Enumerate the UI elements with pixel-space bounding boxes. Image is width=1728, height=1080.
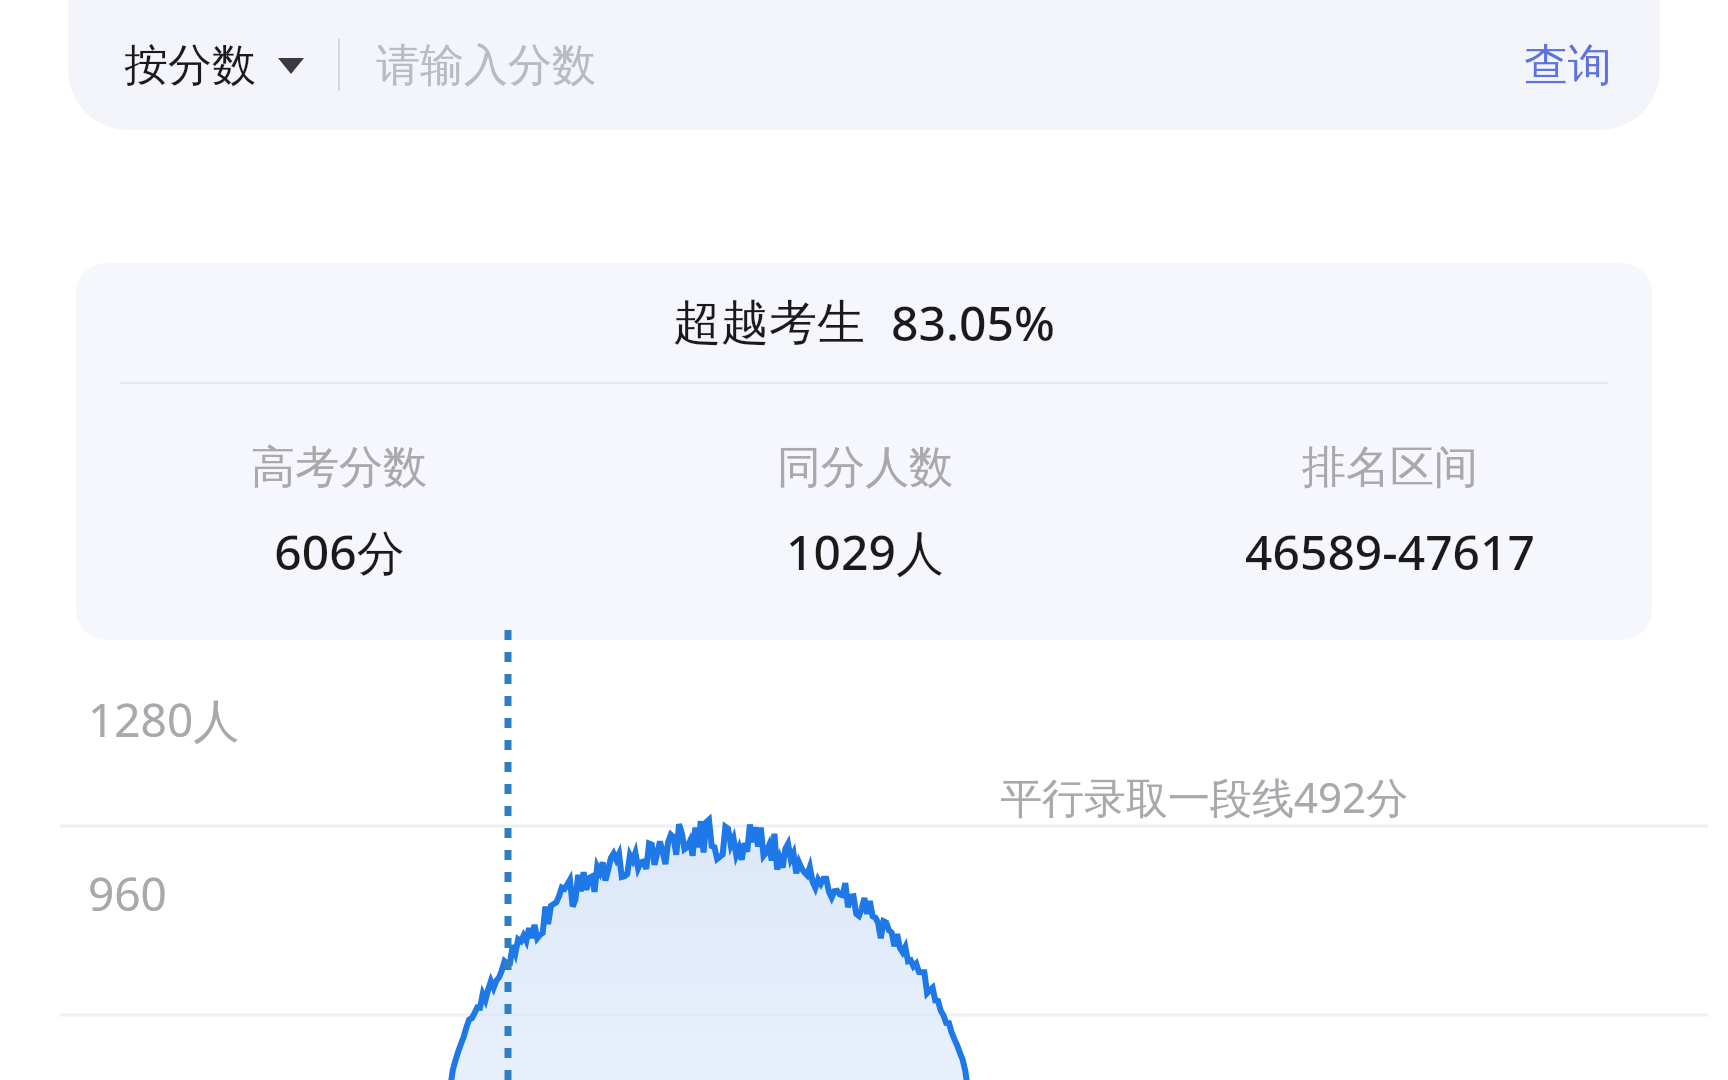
staticText: 排名区间 [1302,440,1478,495]
staticText: 46589-47617 [1245,519,1535,584]
button[interactable]: 排名区间 [1127,384,1652,640]
button[interactable]: 高考分数 [76,384,602,640]
staticText: 同分人数 [777,440,953,495]
staticText: 超越考生 [673,293,865,353]
staticText: 83.05% [891,290,1055,355]
button[interactable]: 超越考生 [76,263,1652,640]
staticText: 查询 [1524,38,1612,93]
staticText: 高考分数 [251,440,427,495]
button[interactable]: 按分数 [124,38,308,93]
staticText: 平行录取一段线492分 [1000,768,1409,825]
button[interactable]: 同分人数 [602,384,1127,640]
staticText: 606分 [274,519,405,585]
button[interactable]: 查询 [1516,30,1620,101]
staticText: 请输入分数 [376,38,596,93]
staticText: 1029人 [786,519,944,585]
staticText: 1280人 [88,688,240,751]
button[interactable]: 请输入分数 [376,0,1516,130]
staticText: 960 [88,862,167,925]
staticText: 按分数 [124,38,256,93]
